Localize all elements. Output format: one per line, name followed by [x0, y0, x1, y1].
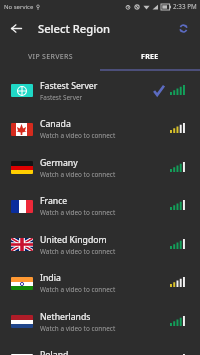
staticText: Watch a video to connect: [40, 285, 116, 294]
button[interactable]: Refresh: [167, 13, 199, 44]
button[interactable]: Back: [0, 13, 32, 44]
staticText: Watch a video to connect: [40, 324, 116, 333]
staticText: Canada: [40, 118, 71, 130]
button[interactable]: France: [0, 187, 200, 225]
button[interactable]: Canada: [0, 110, 200, 148]
button[interactable]: United Kingdom: [0, 225, 200, 264]
staticText: No service: [4, 3, 34, 11]
button[interactable]: Poland: [0, 341, 200, 355]
staticText: Fastest Server: [40, 93, 83, 102]
button[interactable]: FREE: [100, 44, 200, 69]
staticText: Germany: [40, 157, 78, 169]
staticText: United Kingdom: [40, 234, 107, 246]
staticText: Netherlands: [40, 311, 91, 323]
staticText: France: [40, 195, 68, 207]
button[interactable]: VIP SERVERS: [0, 44, 100, 69]
staticText: Watch a video to connect: [40, 208, 116, 217]
staticText: Select Region: [38, 21, 111, 36]
staticText: India: [40, 272, 61, 284]
staticText: FREE: [141, 52, 159, 62]
button[interactable]: India: [0, 264, 200, 302]
staticText: 2:33 PM: [173, 2, 197, 11]
button[interactable]: Netherlands: [0, 302, 200, 341]
staticText: Watch a video to connect: [40, 131, 116, 140]
button[interactable]: Germany: [0, 148, 200, 187]
staticText: Poland: [40, 349, 69, 355]
staticText: Fastest Server: [40, 80, 98, 92]
staticText: Watch a video to connect: [40, 170, 116, 179]
staticText: Watch a video to connect: [40, 247, 116, 256]
staticText: VIP SERVERS: [28, 52, 73, 62]
button[interactable]: Fastest Server: [0, 71, 200, 110]
